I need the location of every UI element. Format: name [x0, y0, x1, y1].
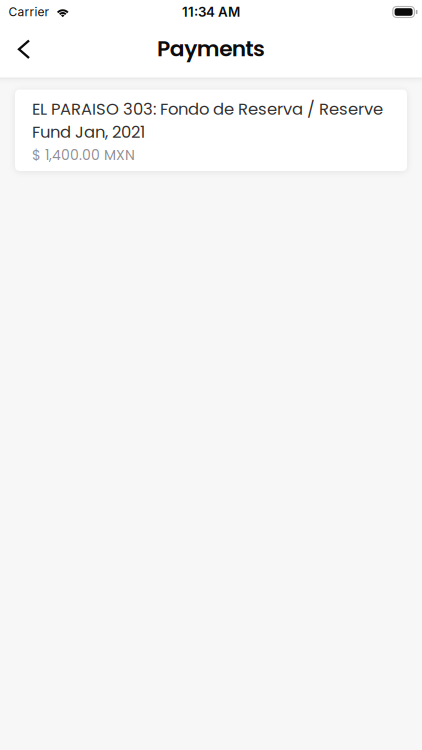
- staticText: EL PARAISO 303: Fondo de Reserva / Reser…: [32, 97, 383, 143]
- staticText: $ 1,400.00 MXN: [32, 145, 135, 165]
- button[interactable]: Back: [0, 29, 44, 69]
- staticText: Carrier: [8, 5, 49, 19]
- staticText: 11:34 AM: [182, 4, 240, 20]
- button[interactable]: EL PARAISO 303: Fondo de Reserva / Reser…: [15, 89, 407, 171]
- staticText: Payments: [157, 33, 265, 64]
